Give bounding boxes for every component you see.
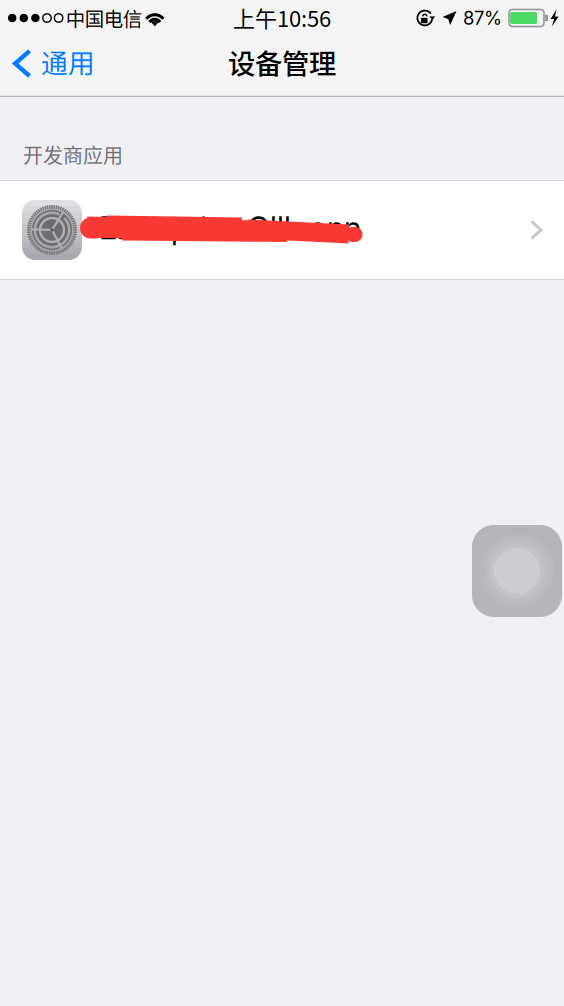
staticText: 中国电信 xyxy=(66,4,142,32)
button[interactable]: 通用 xyxy=(0,36,107,97)
staticText: 设备管理 xyxy=(228,42,336,82)
staticText: 上午10:56 xyxy=(233,2,331,33)
button[interactable]: Enterprise Gllloonn xyxy=(0,180,564,280)
button[interactable]: AssistiveTouch xyxy=(472,525,562,617)
staticText: Enterprise Gllloonn xyxy=(99,209,361,246)
staticText: 87% xyxy=(463,7,502,29)
staticText: 通用 xyxy=(41,42,95,81)
staticText: 开发商应用 xyxy=(23,140,123,169)
